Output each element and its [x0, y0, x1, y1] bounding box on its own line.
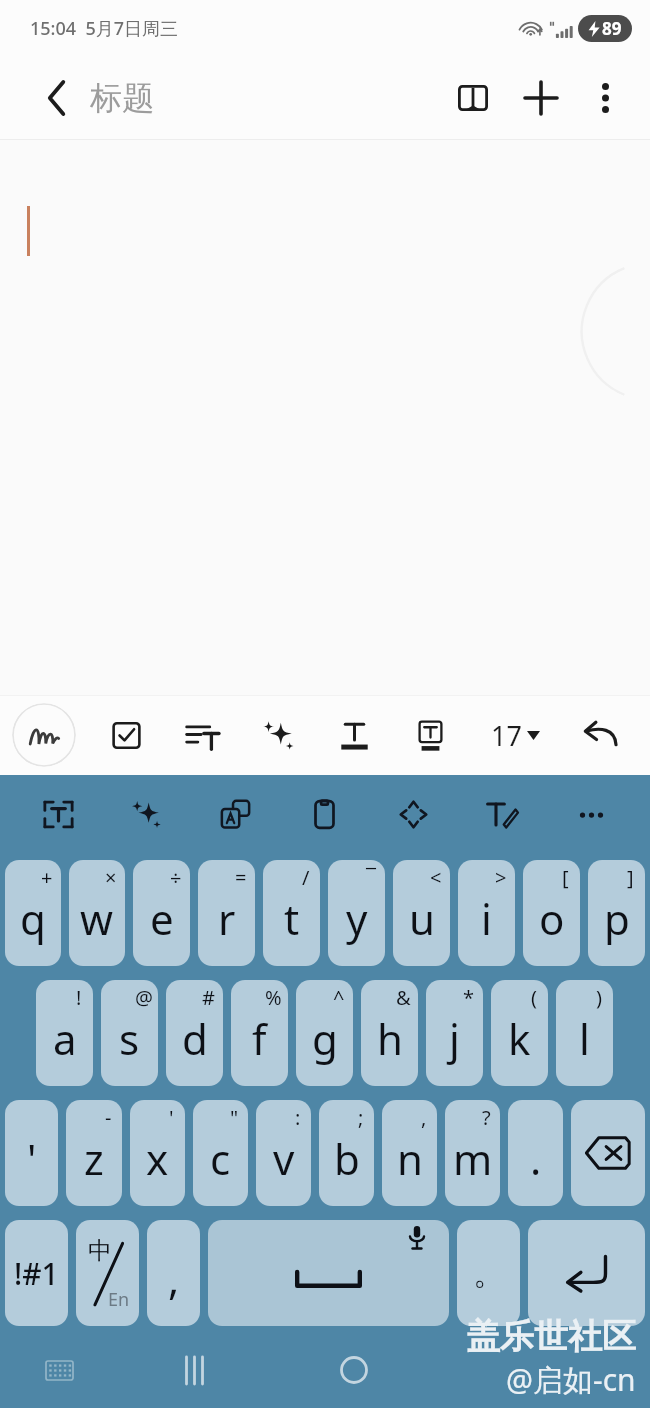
- button[interactable]: v: [256, 1100, 311, 1206]
- button[interactable]: More: [547, 775, 636, 853]
- staticText: z: [84, 1130, 104, 1187]
- button[interactable]: s: [101, 980, 158, 1086]
- button[interactable]: o: [523, 860, 580, 966]
- staticText: h: [377, 1010, 403, 1067]
- button[interactable]: y: [328, 860, 385, 966]
- button[interactable]: Back: [36, 77, 78, 119]
- button[interactable]: Space: [208, 1220, 449, 1326]
- button[interactable]: Handwriting: [12, 703, 76, 767]
- staticText: @: [135, 984, 153, 1011]
- staticText: [: [562, 864, 569, 891]
- staticText: e: [150, 890, 174, 947]
- staticText: l: [579, 1010, 590, 1067]
- button[interactable]: AI writing: [102, 775, 191, 853]
- staticText: v: [273, 1130, 295, 1187]
- button[interactable]: a: [36, 980, 93, 1086]
- button[interactable]: r: [198, 860, 255, 966]
- button[interactable]: t: [263, 860, 320, 966]
- button[interactable]: x: [130, 1100, 185, 1206]
- staticText: =: [235, 864, 247, 891]
- staticText: y: [346, 890, 368, 947]
- button[interactable]: d: [166, 980, 223, 1086]
- staticText: ]: [627, 864, 634, 891]
- staticText: a: [53, 1010, 77, 1067]
- staticText: ): [596, 984, 602, 1011]
- button[interactable]: c: [193, 1100, 248, 1206]
- button[interactable]: k: [491, 980, 548, 1086]
- staticText: 17: [491, 717, 522, 754]
- staticText: n: [397, 1130, 423, 1187]
- button[interactable]: Home: [270, 1332, 437, 1408]
- button[interactable]: Text box: [392, 695, 468, 775]
- button[interactable]: l: [556, 980, 613, 1086]
- button[interactable]: [0, 140, 650, 695]
- button[interactable]: Translate: [191, 775, 280, 853]
- staticText: r: [218, 890, 236, 947]
- button[interactable]: Checklist: [88, 695, 164, 775]
- staticText: +: [41, 864, 53, 891]
- button[interactable]: e: [133, 860, 190, 966]
- button[interactable]: b: [319, 1100, 374, 1206]
- button[interactable]: Enter: [528, 1220, 645, 1326]
- button[interactable]: ': [5, 1100, 58, 1206]
- staticText: b: [334, 1130, 360, 1187]
- staticText: :: [295, 1104, 301, 1131]
- button[interactable]: q: [5, 860, 61, 966]
- button[interactable]: Handwriting input: [458, 775, 547, 853]
- button[interactable]: .: [508, 1100, 563, 1206]
- staticText: j: [449, 1010, 460, 1067]
- staticText: >: [495, 864, 507, 891]
- button[interactable]: u: [393, 860, 450, 966]
- staticText: ×: [105, 864, 117, 891]
- button[interactable]: Text style: [316, 695, 392, 775]
- staticText: o: [539, 890, 565, 947]
- button[interactable]: p: [588, 860, 645, 966]
- staticText: t: [284, 890, 300, 947]
- button[interactable]: Add: [514, 71, 568, 125]
- button[interactable]: Switch language: [76, 1220, 139, 1326]
- staticText: u: [409, 890, 435, 947]
- button[interactable]: !#1: [5, 1220, 68, 1326]
- staticText: g: [312, 1010, 338, 1067]
- staticText: ,: [168, 1250, 180, 1307]
- button[interactable]: Text recognition: [14, 775, 102, 853]
- button[interactable]: i: [458, 860, 515, 966]
- button[interactable]: AI assist: [240, 695, 316, 775]
- button[interactable]: n: [382, 1100, 437, 1206]
- staticText: c: [210, 1130, 231, 1187]
- button[interactable]: m: [445, 1100, 500, 1206]
- staticText: 89: [602, 17, 622, 40]
- button[interactable]: f: [231, 980, 288, 1086]
- button[interactable]: 标题: [90, 78, 154, 118]
- button[interactable]: Clipboard: [280, 775, 369, 853]
- staticText: ¯: [366, 864, 376, 891]
- staticText: @启如-cn: [506, 1359, 636, 1400]
- staticText: i: [481, 890, 492, 947]
- button[interactable]: Move cursor: [369, 775, 458, 853]
- button[interactable]: j: [426, 980, 483, 1086]
- button[interactable]: Hide keyboard: [0, 1332, 118, 1408]
- button[interactable]: 。: [457, 1220, 520, 1326]
- button[interactable]: Backspace: [571, 1100, 645, 1206]
- button[interactable]: ,: [147, 1220, 200, 1326]
- button[interactable]: Paragraph style: [164, 695, 240, 775]
- staticText: ,: [421, 1104, 427, 1131]
- button[interactable]: 17: [468, 695, 562, 775]
- staticText: !#1: [14, 1253, 59, 1294]
- button[interactable]: Reading view: [446, 71, 500, 125]
- staticText: (: [531, 984, 537, 1011]
- staticText: f: [252, 1010, 267, 1067]
- button[interactable]: z: [66, 1100, 122, 1206]
- staticText: !: [76, 984, 82, 1011]
- button[interactable]: w: [69, 860, 125, 966]
- button[interactable]: More options: [580, 73, 630, 123]
- button[interactable]: h: [361, 980, 418, 1086]
- button[interactable]: Recent apps: [118, 1332, 270, 1408]
- button[interactable]: g: [296, 980, 353, 1086]
- staticText: ^: [333, 984, 345, 1011]
- staticText: 15:04 5月7日周三: [30, 16, 179, 41]
- staticText: 盖乐世社区: [466, 1315, 636, 1358]
- staticText: q: [20, 890, 46, 947]
- staticText: k: [508, 1010, 531, 1067]
- button[interactable]: Undo: [562, 695, 638, 775]
